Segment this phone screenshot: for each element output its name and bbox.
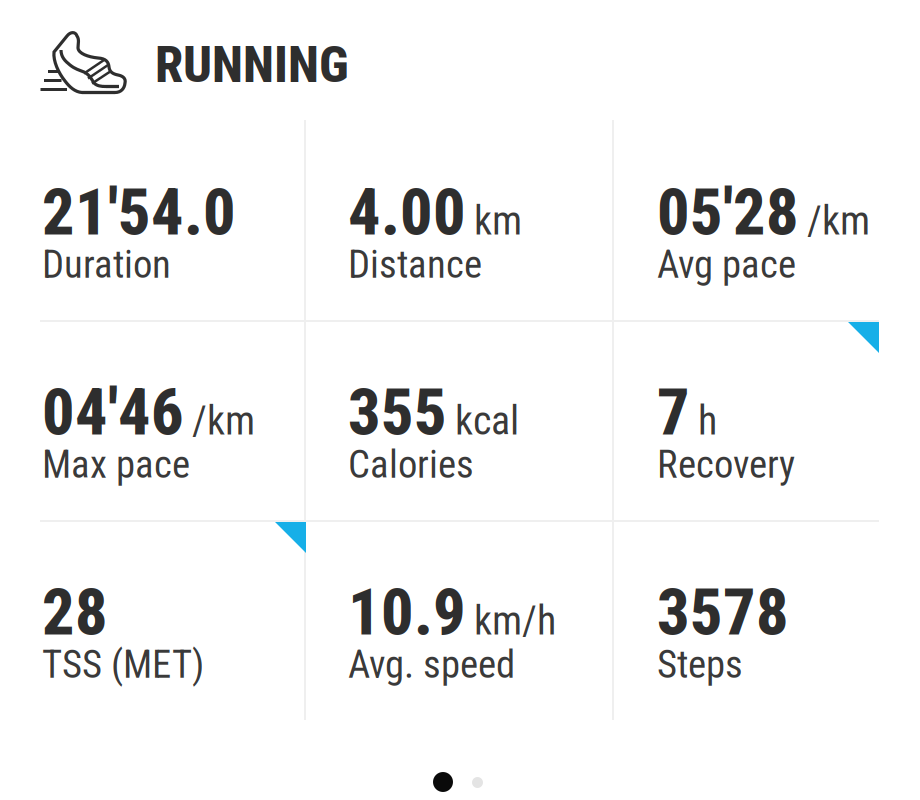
button[interactable]: 05'28 [657,175,907,280]
staticText: Avg. speed [348,642,515,687]
staticText: 05'28 [657,175,799,250]
staticText: Distance [348,242,482,287]
button[interactable]: 355 [348,375,598,480]
staticText: kcal [455,397,519,444]
button[interactable]: Page 1 [433,772,453,792]
staticText: 21'54.0 [42,175,236,250]
staticText: TSS (MET) [42,642,204,687]
staticText: km/h [474,597,556,644]
button[interactable]: 7 [657,375,907,480]
staticText: Recovery [657,442,795,487]
button[interactable]: 4.00 [348,175,598,280]
button[interactable]: 3578 [657,575,907,680]
staticText: 10.9 [348,575,466,650]
staticText: Max pace [42,442,190,487]
staticText: h [698,397,717,444]
staticText: Avg pace [657,242,796,287]
staticText: 4.00 [348,175,466,250]
staticText: 04'46 [42,375,184,450]
button[interactable]: 28 [42,575,292,680]
button[interactable]: 21'54.0 [42,175,292,280]
button[interactable]: RUNNING [40,24,360,98]
button[interactable]: 10.9 [348,575,598,680]
button[interactable]: Page 2 [472,777,483,788]
staticText: RUNNING [155,35,349,94]
staticText: 7 [657,375,690,450]
staticText: 355 [348,375,447,450]
staticText: Calories [348,442,474,487]
button[interactable]: 04'46 [42,375,292,480]
staticText: km [474,197,522,244]
staticText: 28 [42,575,108,650]
staticText: /km [192,397,255,444]
staticText: /km [807,197,870,244]
staticText: Duration [42,242,171,287]
staticText: Steps [657,642,743,687]
staticText: 3578 [657,575,789,650]
